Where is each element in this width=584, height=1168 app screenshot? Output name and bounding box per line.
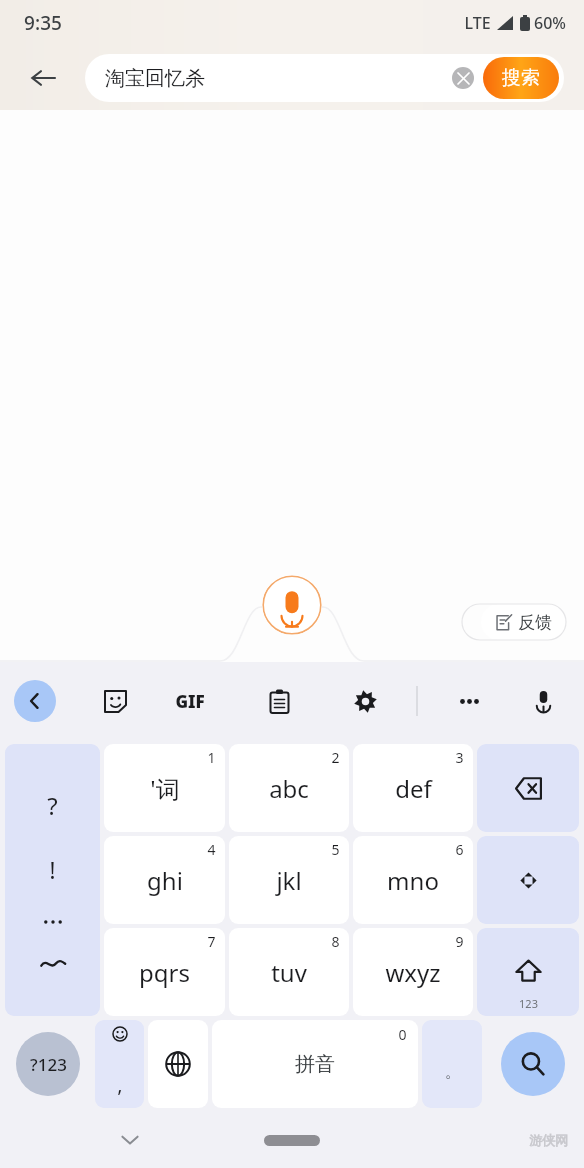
staticText: , — [117, 1071, 123, 1098]
staticText: 游侠网 — [529, 1132, 568, 1148]
staticText: 60% — [534, 12, 566, 34]
staticText: 2 — [331, 748, 340, 767]
staticText: 3 — [455, 748, 464, 767]
button[interactable]: ?123 — [16, 1032, 80, 1096]
staticText: 拼音 — [295, 1052, 335, 1077]
staticText: GIF — [175, 690, 205, 713]
staticText: '词 — [150, 772, 180, 805]
staticText: 1 — [207, 748, 216, 767]
button[interactable]: Hide keyboard — [108, 1118, 152, 1162]
staticText: jkl — [276, 864, 302, 897]
button[interactable]: Move cursor — [477, 836, 579, 924]
button[interactable]: Voice input — [262, 575, 322, 635]
staticText: 123 — [519, 996, 538, 1011]
staticText: 9:35 — [24, 10, 62, 36]
staticText: abc — [269, 772, 309, 805]
button[interactable]: Backspace — [477, 744, 579, 832]
staticText: 9 — [455, 932, 464, 951]
staticText: def — [395, 772, 432, 805]
button[interactable]: Clipboard — [256, 678, 302, 724]
staticText: wxyz — [385, 956, 441, 989]
staticText: 7 — [207, 932, 216, 951]
button[interactable]: wxyz — [353, 928, 473, 1016]
button[interactable]: Shift, 123 — [477, 928, 579, 1016]
button[interactable]: 淘宝回忆杀 — [85, 54, 564, 102]
button[interactable]: Search — [501, 1032, 565, 1096]
staticText: ! — [49, 853, 56, 886]
staticText: ghi — [147, 864, 183, 897]
button[interactable]: Back — [0, 46, 85, 110]
button[interactable]: Settings — [342, 678, 388, 724]
button[interactable]: '词 — [104, 744, 225, 832]
button[interactable]: 。 — [422, 1020, 482, 1108]
button[interactable]: 拼音 — [212, 1020, 418, 1108]
button[interactable]: ? — [5, 744, 100, 1016]
staticText: tuv — [271, 956, 307, 989]
staticText: 6 — [455, 840, 464, 859]
button[interactable]: Home gesture — [264, 1135, 320, 1146]
staticText: ?123 — [30, 1053, 67, 1076]
button[interactable]: jkl — [229, 836, 349, 924]
staticText: ? — [47, 789, 58, 822]
staticText: pqrs — [139, 956, 190, 989]
button[interactable]: Close toolbar — [14, 680, 56, 722]
staticText: 8 — [331, 932, 340, 951]
button[interactable]: 反馈 — [481, 604, 566, 640]
staticText: 5 — [331, 840, 340, 859]
button[interactable]: ghi — [104, 836, 225, 924]
button[interactable]: 搜索 — [483, 57, 559, 99]
button[interactable]: , — [95, 1020, 144, 1108]
staticText: 0 — [398, 1025, 407, 1044]
button[interactable]: abc — [229, 744, 349, 832]
button[interactable]: Clear text — [452, 67, 474, 89]
staticText: 4 — [207, 840, 216, 859]
button[interactable]: GIF — [168, 679, 212, 723]
button[interactable]: def — [353, 744, 473, 832]
button[interactable]: tuv — [229, 928, 349, 1016]
staticText: 反馈 — [518, 612, 552, 633]
button[interactable]: Stickers — [92, 678, 138, 724]
staticText: 。 — [445, 1063, 460, 1082]
button[interactable]: mno — [353, 836, 473, 924]
staticText: 搜索 — [502, 66, 540, 90]
button[interactable]: More options — [446, 678, 492, 724]
button[interactable]: Voice typing — [520, 678, 566, 724]
button[interactable]: Switch language — [148, 1020, 208, 1108]
button[interactable]: pqrs — [104, 928, 225, 1016]
staticText: mno — [387, 864, 439, 897]
staticText: 淘宝回忆杀 — [105, 66, 205, 91]
staticText: LTE — [464, 12, 491, 34]
